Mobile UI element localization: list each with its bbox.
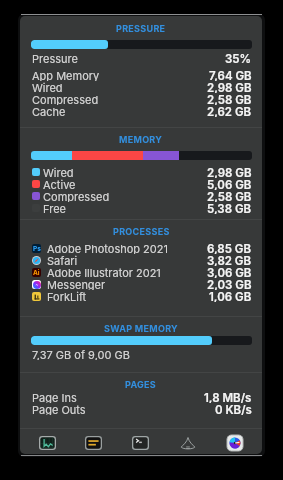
button[interactable]: iStat Menus settings xyxy=(211,429,258,454)
button[interactable]: Ps xyxy=(32,242,252,254)
staticText: 2,98 GB xyxy=(207,166,252,178)
staticText: Wired xyxy=(43,166,74,178)
button[interactable]: Compressed xyxy=(32,93,252,105)
button[interactable]: PAGES xyxy=(20,378,262,391)
button[interactable]: Eject disks xyxy=(164,429,211,454)
staticText: Ps xyxy=(33,245,41,253)
staticText: Safari xyxy=(47,254,78,266)
button[interactable]: Activity Monitor xyxy=(24,429,70,454)
staticText: PAGES xyxy=(125,379,157,390)
staticText: Adobe Photoshop 2021 xyxy=(47,242,168,254)
button[interactable]: Messenger xyxy=(32,278,252,290)
button[interactable]: Page Outs xyxy=(32,403,252,415)
staticText: Page Outs xyxy=(32,403,86,415)
button[interactable]: Ai xyxy=(32,266,252,278)
staticText: MEMORY xyxy=(119,134,163,145)
button[interactable]: MEMORY xyxy=(20,133,262,146)
button[interactable]: Wired xyxy=(32,166,252,178)
staticText: 0 KB/s xyxy=(215,403,252,415)
staticText: 1,8 MB/s xyxy=(204,391,252,403)
staticText: Pressure xyxy=(32,52,78,64)
button[interactable]: Console xyxy=(70,429,117,454)
button[interactable]: Wired xyxy=(32,81,252,93)
staticText: Messenger xyxy=(47,278,106,290)
staticText: 5,38 GB xyxy=(207,202,252,214)
staticText: Compressed xyxy=(32,93,99,105)
staticText: 2,03 GB xyxy=(207,278,252,290)
staticText: 5,06 GB xyxy=(207,178,252,190)
staticText: 1,06 GB xyxy=(209,290,252,302)
button[interactable]: ForkLift xyxy=(32,290,252,302)
button[interactable]: SWAP MEMORY xyxy=(20,322,262,335)
staticText: SWAP MEMORY xyxy=(104,323,178,334)
button[interactable]: Compressed xyxy=(32,190,252,202)
staticText: 2,98 GB xyxy=(207,81,252,93)
staticText: 7,64 GB xyxy=(209,69,252,81)
staticText: Free xyxy=(43,202,66,214)
staticText: Active xyxy=(43,178,76,190)
button[interactable]: Safari xyxy=(32,254,252,266)
button[interactable]: Pressure xyxy=(32,52,252,64)
staticText: 35% xyxy=(225,52,252,64)
staticText: Compressed xyxy=(43,190,110,202)
button[interactable]: Terminal xyxy=(117,429,164,454)
button[interactable]: Free xyxy=(32,202,252,214)
staticText: 2,62 GB xyxy=(207,105,252,117)
staticText: Cache xyxy=(32,105,66,117)
staticText: 2,58 GB xyxy=(207,93,252,105)
staticText: ForkLift xyxy=(47,290,87,302)
staticText: Adobe Illustrator 2021 xyxy=(47,266,161,278)
button[interactable]: PRESSURE xyxy=(20,22,262,35)
staticText: 7,37 GB of 9,00 GB xyxy=(32,348,130,360)
staticText: PROCESSES xyxy=(113,226,170,237)
staticText: 3,82 GB xyxy=(207,254,252,266)
button[interactable]: Page Ins xyxy=(32,391,252,403)
button[interactable]: PROCESSES xyxy=(20,225,262,238)
staticText: Page Ins xyxy=(32,391,77,403)
staticText: 6,85 GB xyxy=(207,242,252,254)
staticText: 3,06 GB xyxy=(207,266,252,278)
button[interactable]: Cache xyxy=(32,105,252,117)
staticText: Wired xyxy=(32,81,63,93)
button[interactable]: App Memory xyxy=(32,69,252,81)
staticText: App Memory xyxy=(32,69,100,81)
staticText: 2,58 GB xyxy=(207,190,252,202)
staticText: Ai xyxy=(33,269,40,277)
staticText: PRESSURE xyxy=(116,23,166,34)
button[interactable]: Active xyxy=(32,178,252,190)
